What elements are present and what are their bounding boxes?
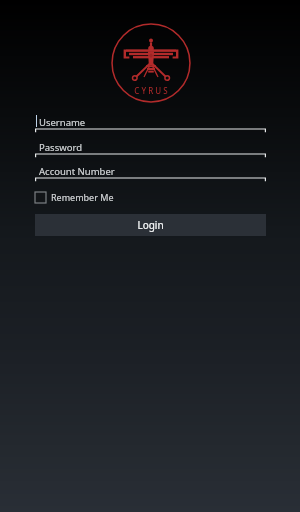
staticText: C Y R U S [111,85,191,96]
button[interactable]: Login [35,214,266,236]
staticText: Account Number [39,165,115,178]
button[interactable]: Username [35,114,266,133]
staticText: Password [39,141,82,154]
other: Cyrus logo [111,23,191,103]
staticText: Remember Me [51,191,114,203]
button[interactable]: Remember Me [35,187,114,207]
staticText: Username [39,116,86,129]
staticText: Login [137,218,164,232]
button[interactable]: Account Number [35,163,266,182]
button[interactable]: Password [35,139,266,158]
